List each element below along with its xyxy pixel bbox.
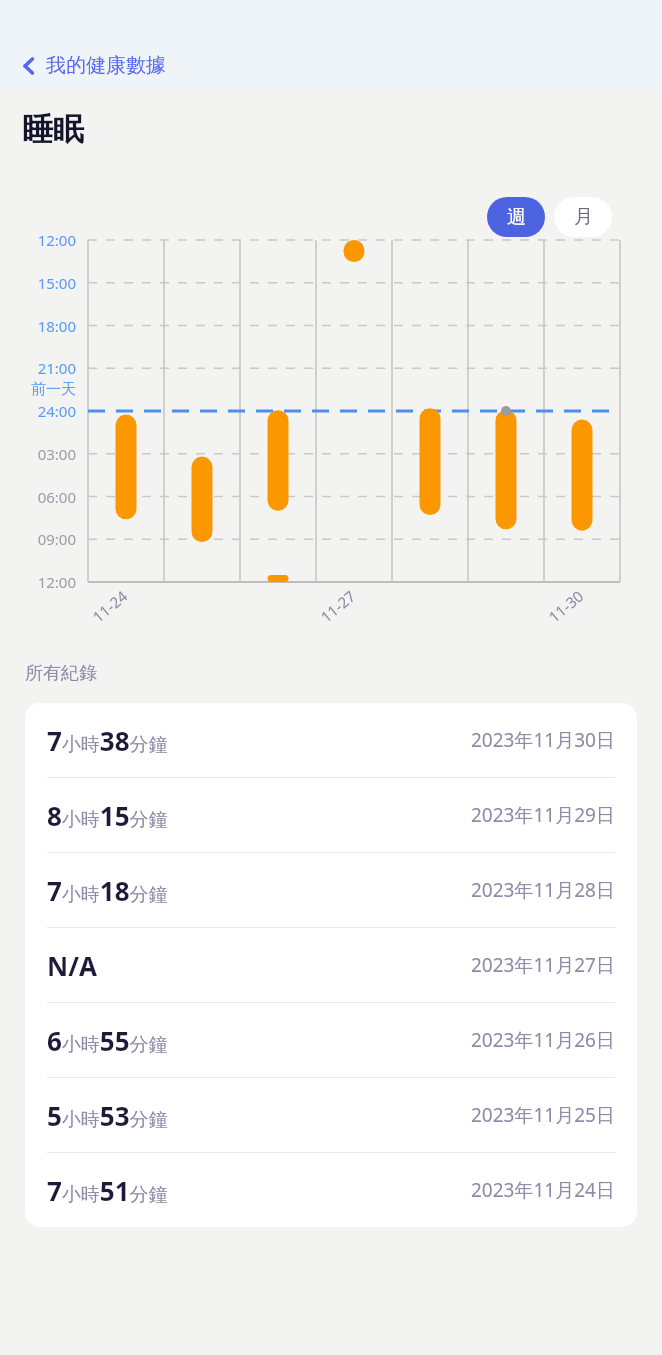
staticText: 5小時53分鐘 (47, 1098, 168, 1133)
button[interactable]: N/A (25, 928, 637, 1002)
staticText: 18:00 (0, 316, 76, 336)
staticText: 24:00 (0, 401, 76, 421)
staticText: 11-24 (88, 585, 132, 626)
button[interactable]: 5小時53分鐘 (25, 1078, 637, 1152)
staticText: 2023年11月27日 (471, 952, 615, 978)
staticText: 2023年11月25日 (471, 1102, 615, 1128)
button[interactable]: 7小時51分鐘 (25, 1153, 637, 1227)
staticText: 7小時51分鐘 (47, 1173, 168, 1208)
button[interactable]: 月 (554, 197, 612, 237)
staticText: 11-30 (544, 585, 588, 626)
staticText: 09:00 (0, 529, 76, 549)
staticText: 我的健康數據 (46, 53, 166, 78)
staticText: 12:00 (0, 572, 76, 592)
staticText: 03:00 (0, 444, 76, 464)
button[interactable]: 週 (487, 197, 545, 237)
staticText: 6小時55分鐘 (47, 1023, 168, 1058)
button[interactable]: 6小時55分鐘 (25, 1003, 637, 1077)
staticText: 2023年11月26日 (471, 1027, 615, 1053)
button[interactable]: 7小時38分鐘 (25, 703, 637, 777)
staticText: 06:00 (0, 487, 76, 507)
staticText: 11-27 (316, 585, 360, 626)
staticText: 21:00 (0, 358, 76, 378)
staticText: 12:00 (0, 230, 76, 250)
staticText: 睡眠 (22, 110, 84, 149)
staticText: 2023年11月30日 (471, 727, 615, 753)
button[interactable]: 7小時18分鐘 (25, 853, 637, 927)
staticText: N/A (47, 948, 97, 983)
staticText: 2023年11月24日 (471, 1177, 615, 1203)
staticText: 8小時15分鐘 (47, 798, 168, 833)
staticText: 月 (574, 205, 593, 229)
staticText: 週 (507, 205, 526, 229)
staticText: 所有紀錄 (25, 662, 97, 685)
staticText: 2023年11月28日 (471, 877, 615, 903)
staticText: 7小時18分鐘 (47, 873, 168, 908)
staticText: 15:00 (0, 273, 76, 293)
staticText: 前一天 (0, 380, 76, 399)
staticText: 7小時38分鐘 (47, 723, 168, 758)
staticText: 2023年11月29日 (471, 802, 615, 828)
button[interactable]: 8小時15分鐘 (25, 778, 637, 852)
button[interactable]: Back (14, 49, 174, 82)
